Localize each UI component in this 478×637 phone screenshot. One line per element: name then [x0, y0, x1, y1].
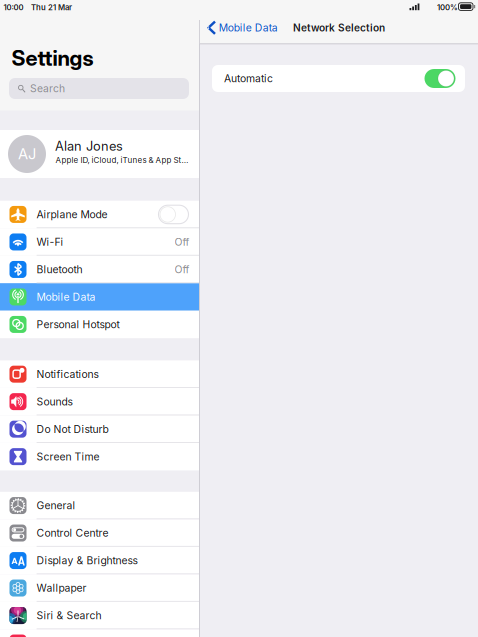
staticText: Mobile Data: [37, 291, 96, 303]
button[interactable]: Automatic: [212, 65, 465, 92]
button[interactable]: AJ: [0, 130, 199, 178]
button[interactable]: Display & Brightness: [0, 547, 199, 574]
button[interactable]: Bluetooth: [0, 256, 199, 283]
staticText: Airplane Mode: [37, 208, 108, 221]
button[interactable]: [0, 629, 199, 637]
staticText: Settings: [11, 45, 93, 71]
staticText: Control Centre: [37, 527, 109, 539]
staticText: Thu 21 Mar: [31, 3, 72, 12]
staticText: Do Not Disturb: [37, 423, 109, 435]
button[interactable]: Airplane Mode: [0, 201, 199, 228]
staticText: 10:00: [4, 3, 24, 12]
staticText: Wallpaper: [37, 582, 87, 594]
staticText: Sounds: [37, 395, 73, 408]
button[interactable]: Search: [9, 78, 189, 99]
button[interactable]: Notifications: [0, 360, 199, 388]
staticText: Siri & Search: [37, 609, 102, 622]
button[interactable]: Siri & Search: [0, 602, 199, 629]
staticText: Alan Jones: [55, 138, 123, 154]
button[interactable]: Screen Time: [0, 443, 199, 470]
staticText: Network Selection: [293, 22, 385, 34]
button[interactable]: Wi-Fi: [0, 228, 199, 256]
staticText: Wi-Fi: [37, 236, 64, 248]
staticText: Apple ID, iCloud, iTunes & App St…: [55, 155, 188, 165]
button[interactable]: Mobile Data: [0, 283, 199, 311]
staticText: AJ: [18, 145, 36, 163]
button[interactable]: Control Centre: [0, 519, 199, 547]
staticText: Automatic: [224, 72, 273, 85]
button[interactable]: Wallpaper: [0, 574, 199, 602]
button[interactable]: Do Not Disturb: [0, 415, 199, 443]
staticText: Search: [30, 82, 65, 95]
staticText: Screen Time: [37, 450, 100, 463]
staticText: 100%: [437, 3, 458, 12]
staticText: Mobile Data: [219, 21, 278, 34]
button[interactable]: General: [0, 492, 199, 519]
button[interactable]: Sounds: [0, 388, 199, 415]
button[interactable]: Personal Hotspot: [0, 311, 199, 338]
button[interactable]: Mobile Data: [200, 20, 272, 36]
staticText: Bluetooth: [37, 263, 83, 276]
staticText: Personal Hotspot: [37, 318, 120, 331]
staticText: Off: [174, 263, 189, 276]
staticText: General: [37, 499, 76, 512]
staticText: Notifications: [37, 368, 99, 380]
staticText: Off: [174, 236, 189, 248]
staticText: Display & Brightness: [37, 554, 138, 567]
